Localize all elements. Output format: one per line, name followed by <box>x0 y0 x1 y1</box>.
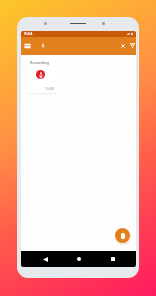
staticText: 9:24 <box>24 31 33 37</box>
button[interactable]: Home <box>73 253 85 265</box>
button[interactable]: Recording <box>27 56 56 93</box>
button[interactable]: Back <box>39 253 51 265</box>
button[interactable]: Close <box>116 39 129 52</box>
button[interactable]: Menu <box>21 39 34 52</box>
button[interactable]: Recents <box>107 253 119 265</box>
staticText: Recording <box>30 60 49 65</box>
button[interactable]: Record <box>36 70 45 79</box>
staticText: 10:48 <box>45 86 54 91</box>
button[interactable]: New recording <box>115 228 130 243</box>
button[interactable]: Sort <box>126 39 136 52</box>
